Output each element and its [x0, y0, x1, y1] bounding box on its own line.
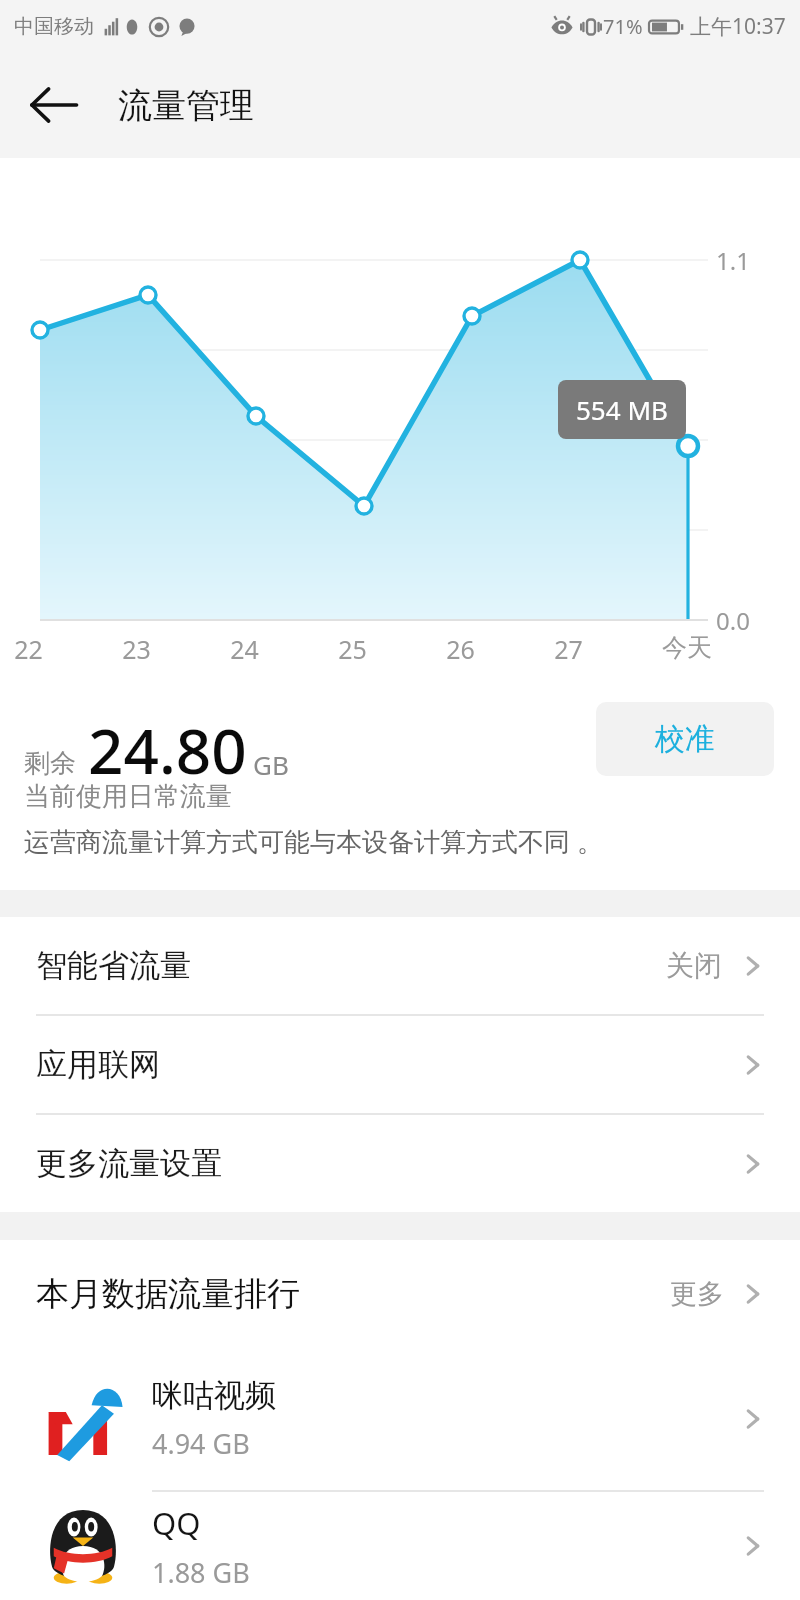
- button[interactable]: 更多流量设置: [0, 1115, 800, 1212]
- staticText: 今天: [662, 632, 712, 663]
- staticText: 本月数据流量排行: [36, 1273, 300, 1315]
- staticText: 27: [554, 632, 583, 666]
- staticText: QQ: [152, 1502, 201, 1544]
- staticText: 中国移动: [14, 14, 94, 39]
- staticText: 1.1: [716, 244, 750, 277]
- staticText: 上午10:37: [690, 12, 786, 41]
- staticText: 当前使用日常流量: [24, 780, 232, 813]
- staticText: 24.80: [88, 708, 247, 792]
- staticText: 流量管理: [118, 84, 254, 127]
- staticText: 71%: [603, 13, 643, 40]
- staticText: 智能省流量: [36, 946, 191, 985]
- button[interactable]: 本月数据流量排行: [0, 1240, 800, 1348]
- staticText: 剩余: [24, 747, 76, 780]
- staticText: 0.0: [716, 604, 750, 637]
- staticText: 23: [122, 632, 151, 666]
- button[interactable]: Back: [22, 74, 84, 136]
- staticText: 更多: [670, 1277, 724, 1311]
- button[interactable]: 智能省流量: [0, 917, 800, 1014]
- staticText: 24: [230, 632, 259, 666]
- staticText: 25: [338, 632, 367, 666]
- staticText: 咪咕视频: [152, 1376, 276, 1415]
- staticText: 22: [14, 632, 43, 666]
- button[interactable]: 咪咕视频: [0, 1348, 800, 1490]
- button[interactable]: 应用联网: [0, 1016, 800, 1113]
- button[interactable]: QQ: [0, 1492, 800, 1600]
- staticText: 应用联网: [36, 1045, 160, 1084]
- staticText: 4.94 GB: [152, 1425, 250, 1462]
- staticText: 554 MB: [576, 392, 668, 427]
- staticText: 校准: [655, 720, 715, 758]
- staticText: 运营商流量计算方式可能与本设备计算方式不同 。: [24, 823, 603, 859]
- staticText: 关闭: [666, 948, 722, 983]
- staticText: GB: [253, 747, 289, 782]
- staticText: 26: [446, 632, 475, 666]
- staticText: 1.88 GB: [152, 1554, 250, 1591]
- staticText: 更多流量设置: [36, 1144, 222, 1183]
- button[interactable]: 校准: [596, 702, 774, 776]
